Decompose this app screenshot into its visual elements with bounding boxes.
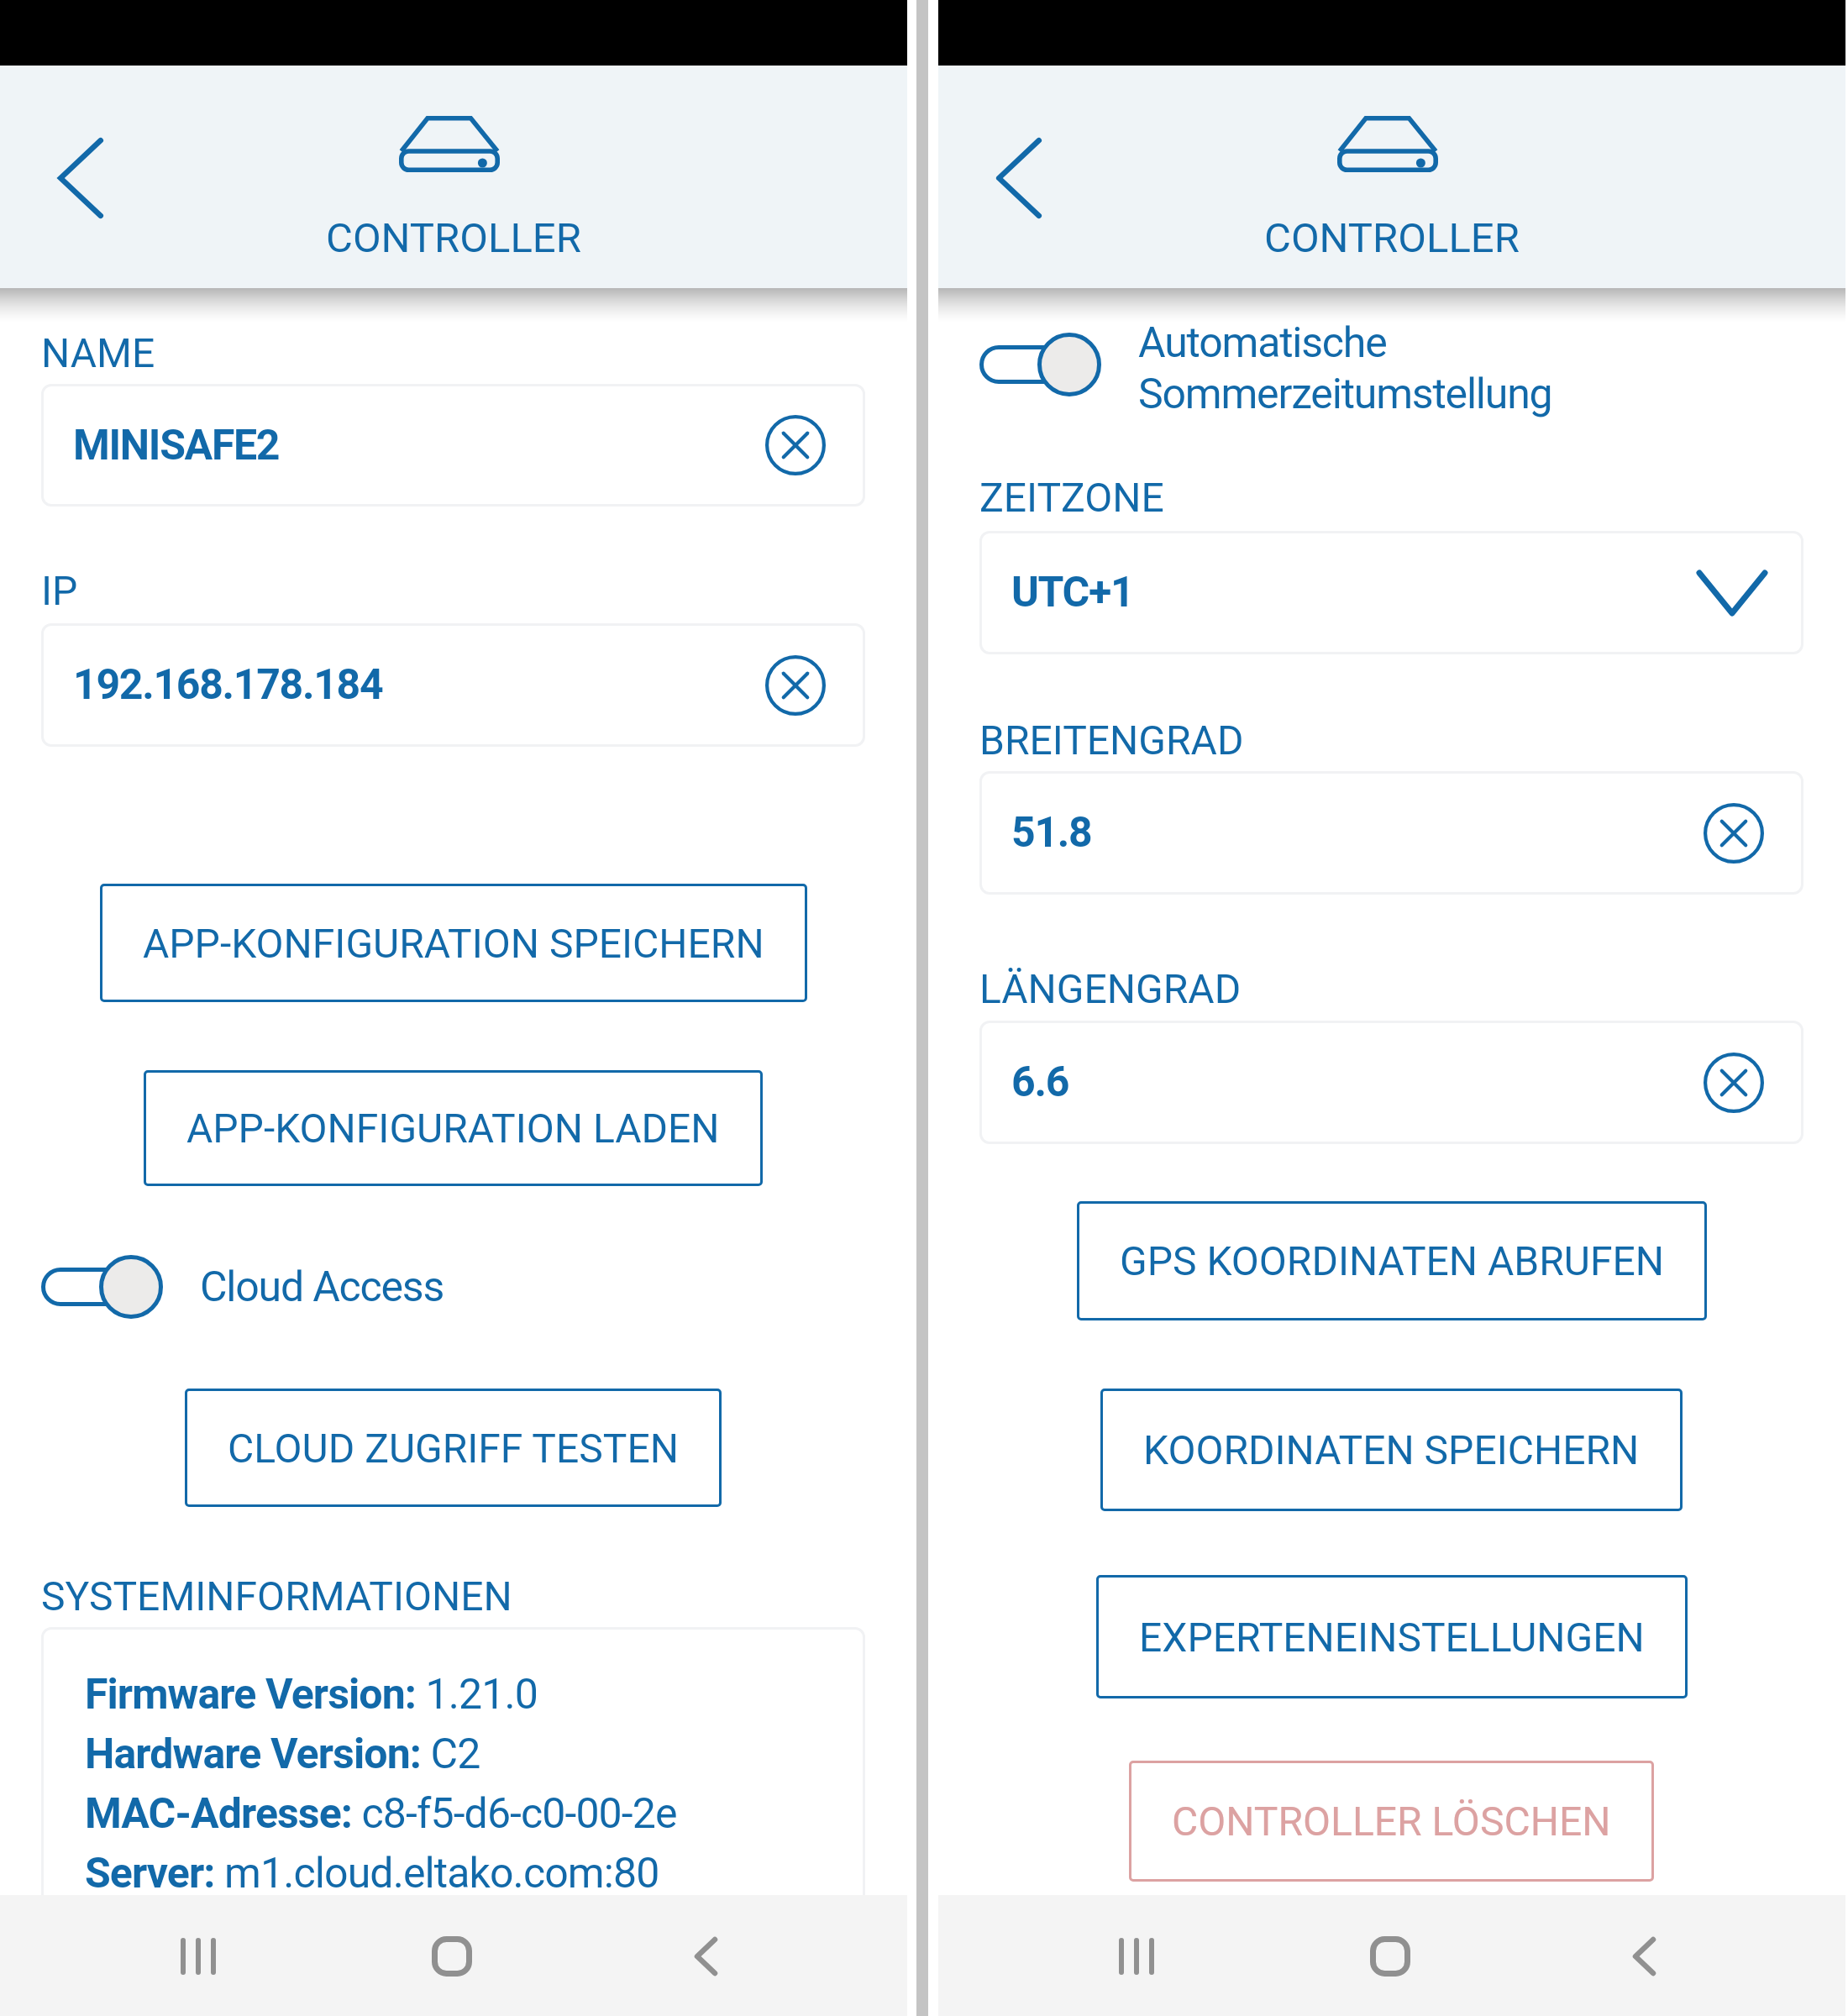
button[interactable]: KOORDINATEN SPEICHERN <box>1100 1389 1683 1511</box>
staticText: ZEITZONE <box>979 474 1164 521</box>
staticText: CONTROLLER <box>1264 214 1520 262</box>
staticText: APP-KONFIGURATION SPEICHERN <box>143 920 764 967</box>
button[interactable]: Recent apps <box>160 1919 236 1994</box>
button[interactable]: Clear <box>765 655 826 716</box>
staticText: SYSTEMINFORMATIONEN <box>41 1572 512 1620</box>
button[interactable]: Home <box>1352 1919 1428 1994</box>
button[interactable]: Automatische Sommerzeitumstellung <box>979 333 1101 396</box>
button[interactable]: Clear <box>1704 803 1764 864</box>
button[interactable]: Home <box>414 1919 490 1994</box>
staticText: EXPERTENEINSTELLUNGEN <box>1139 1614 1645 1661</box>
button[interactable]: Recent apps <box>1099 1919 1174 1994</box>
staticText: Cloud Access <box>200 1263 444 1312</box>
button[interactable]: 51.8 <box>979 771 1803 895</box>
staticText: LÄNGENGRAD <box>979 965 1242 1012</box>
button[interactable]: APP-KONFIGURATION LADEN <box>144 1070 763 1186</box>
button[interactable]: Cloud Access <box>41 1255 163 1319</box>
staticText: IP <box>41 567 78 614</box>
button[interactable]: CONTROLLER LÖSCHEN <box>1129 1761 1654 1882</box>
staticText: GPS KOORDINATEN ABRUFEN <box>1120 1237 1664 1284</box>
button[interactable]: 192.168.178.184 <box>41 623 865 747</box>
staticText: CONTROLLER LÖSCHEN <box>1172 1798 1611 1845</box>
button[interactable]: Clear <box>1704 1053 1764 1113</box>
staticText: CLOUD ZUGRIFF TESTEN <box>228 1425 679 1472</box>
button[interactable]: Back <box>668 1919 743 1994</box>
staticText: APP-KONFIGURATION LADEN <box>186 1105 720 1152</box>
staticText: Firmware Version: 1.21.0 Hardware Versio… <box>85 1670 677 1898</box>
staticText: 51.8 <box>1011 808 1092 858</box>
button[interactable]: Back <box>958 118 1079 239</box>
button[interactable]: GPS KOORDINATEN ABRUFEN <box>1077 1201 1707 1320</box>
button[interactable]: 6.6 <box>979 1021 1803 1144</box>
staticText: Automatische Sommerzeitumstellung <box>1138 318 1552 418</box>
button[interactable]: EXPERTENEINSTELLUNGEN <box>1096 1575 1688 1698</box>
button[interactable]: Back <box>20 118 141 239</box>
button[interactable]: MINISAFE2 <box>41 384 865 507</box>
staticText: 6.6 <box>1011 1058 1069 1107</box>
staticText: NAME <box>41 329 155 376</box>
staticText: MINISAFE2 <box>73 421 280 470</box>
staticText: KOORDINATEN SPEICHERN <box>1143 1426 1640 1473</box>
staticText: 192.168.178.184 <box>73 660 383 710</box>
staticText: CONTROLLER <box>326 214 581 262</box>
button[interactable]: APP-KONFIGURATION SPEICHERN <box>100 884 807 1002</box>
staticText: BREITENGRAD <box>979 717 1244 764</box>
button[interactable]: Back <box>1606 1919 1682 1994</box>
button[interactable]: Clear <box>765 415 826 475</box>
button[interactable]: Expand <box>1696 570 1768 617</box>
staticText: UTC+1 <box>1011 568 1134 617</box>
button[interactable]: UTC+1 <box>979 531 1803 654</box>
button[interactable]: CLOUD ZUGRIFF TESTEN <box>185 1389 722 1507</box>
